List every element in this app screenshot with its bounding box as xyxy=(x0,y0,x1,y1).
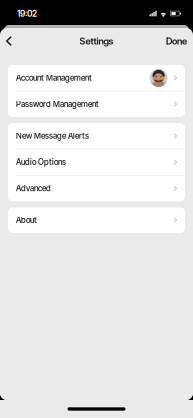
button[interactable]: New Message Alerts xyxy=(8,123,185,149)
staticText: New Message Alerts xyxy=(16,131,89,141)
staticText: Account Management xyxy=(16,73,92,83)
button[interactable]: Done xyxy=(157,29,193,53)
button[interactable]: Advanced xyxy=(8,176,185,201)
button[interactable]: Account Management xyxy=(8,65,185,91)
staticText: Advanced xyxy=(16,184,51,193)
button[interactable]: Password Management xyxy=(8,91,185,117)
staticText: Settings xyxy=(79,35,113,47)
button[interactable]: About xyxy=(8,207,185,233)
staticText: Done xyxy=(166,35,187,47)
staticText: Password Management xyxy=(16,99,99,109)
staticText: 19:02 xyxy=(17,8,37,19)
button[interactable]: Back xyxy=(0,30,21,52)
staticText: Audio Options xyxy=(16,157,66,167)
staticText: About xyxy=(16,215,37,225)
button[interactable]: Audio Options xyxy=(8,149,185,175)
